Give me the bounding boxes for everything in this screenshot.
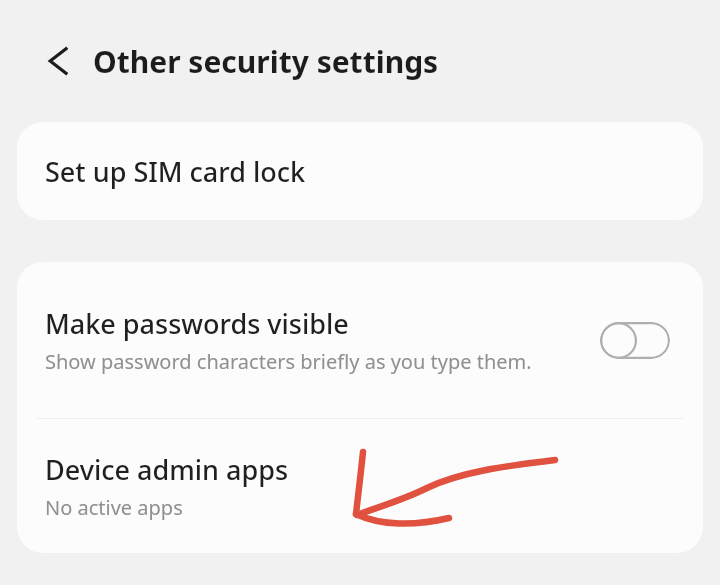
button[interactable]: Make passwords visible toggle: [600, 322, 670, 359]
button[interactable]: Back: [37, 39, 81, 83]
staticText: Make passwords visible: [45, 305, 349, 342]
button[interactable]: Device admin apps: [17, 419, 703, 553]
staticText: Other security settings: [93, 41, 439, 82]
button[interactable]: Set up SIM card lock: [17, 122, 703, 220]
button[interactable]: Make passwords visible: [17, 262, 703, 418]
staticText: Set up SIM card lock: [45, 153, 306, 190]
staticText: No active apps: [45, 494, 183, 521]
staticText: Device admin apps: [45, 451, 289, 488]
staticText: Show password characters briefly as you …: [45, 348, 532, 375]
